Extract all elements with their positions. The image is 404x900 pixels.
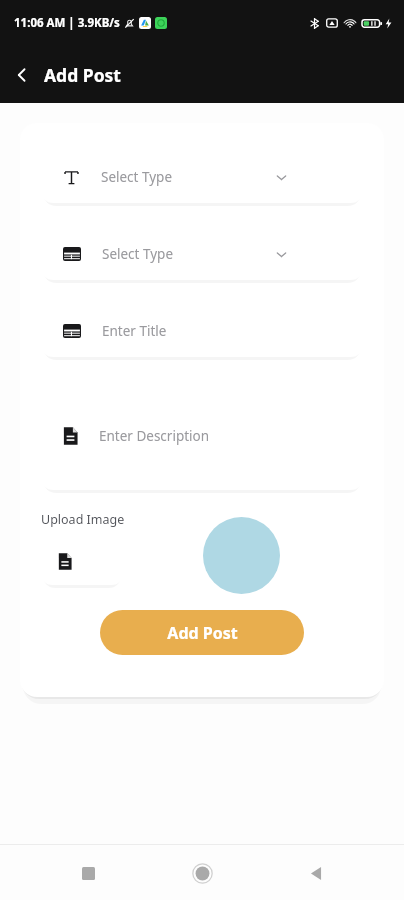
staticText: Upload Image (41, 511, 125, 528)
button[interactable]: Upload image (41, 537, 123, 585)
button[interactable]: Selected image preview (203, 517, 280, 594)
button[interactable]: Home (176, 847, 228, 899)
staticText: Enter Description (99, 427, 210, 445)
button[interactable]: Select Type (41, 151, 363, 203)
staticText: Select Type (101, 168, 173, 186)
staticText: Add Post (44, 63, 121, 87)
staticText: Enter Title (102, 322, 167, 340)
staticText: Select Type (102, 245, 174, 263)
button[interactable]: Recent apps (62, 847, 114, 899)
button[interactable]: Back (290, 847, 342, 899)
button[interactable]: Select Type (41, 228, 363, 280)
button[interactable]: Enter Title (41, 305, 363, 357)
button[interactable]: Enter Description (41, 382, 363, 490)
staticText: Add Post (167, 622, 238, 644)
button[interactable]: Back (0, 53, 44, 97)
button[interactable]: Add Post (100, 610, 304, 655)
staticText: 11:06 AM | 3.9KB/s (14, 15, 120, 31)
